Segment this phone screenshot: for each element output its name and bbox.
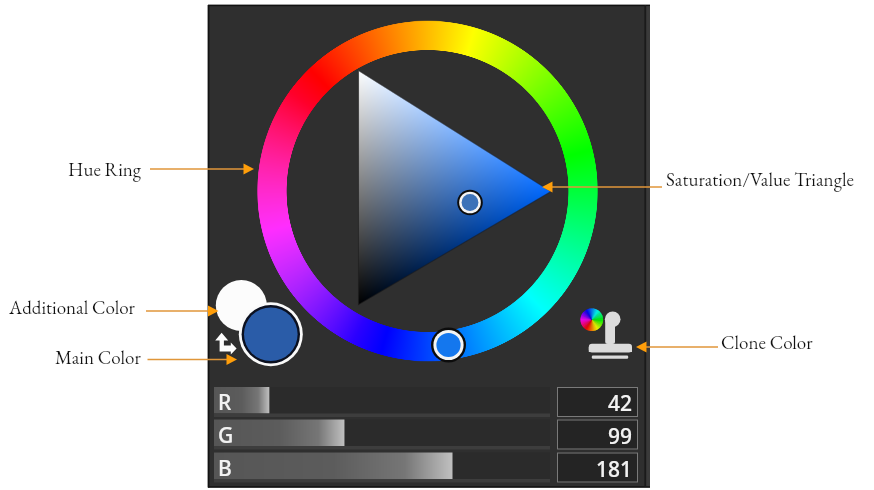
button[interactable]: Green slider xyxy=(214,420,550,447)
button[interactable]: Green value 99 xyxy=(557,420,638,450)
button[interactable]: Swap colors xyxy=(214,331,240,357)
button[interactable]: Red value 42 xyxy=(557,387,638,417)
button[interactable]: Red slider xyxy=(214,387,550,414)
button[interactable]: Hue ring xyxy=(257,21,598,362)
button[interactable]: Clone color xyxy=(581,308,636,362)
button[interactable]: Blue value 181 xyxy=(557,453,638,483)
button[interactable]: Blue slider xyxy=(214,453,550,480)
button[interactable]: Main color xyxy=(239,304,302,367)
button[interactable]: Additional color xyxy=(215,280,265,330)
